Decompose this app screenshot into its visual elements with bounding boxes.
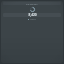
staticText: steps bbox=[30, 18, 36, 21]
staticText: ACTIVITY bbox=[26, 2, 38, 5]
button[interactable]: ACTIVITY bbox=[1, 1, 63, 63]
button[interactable]: 8,420 bbox=[3, 13, 61, 17]
button[interactable]: ACTIVITY bbox=[3, 2, 61, 5]
button[interactable]: Activity progress bbox=[30, 7, 35, 12]
button[interactable]: steps bbox=[3, 18, 61, 21]
staticText: 8,420 bbox=[28, 13, 37, 17]
